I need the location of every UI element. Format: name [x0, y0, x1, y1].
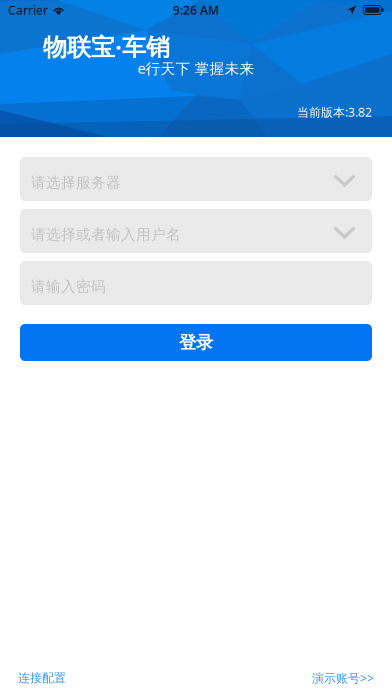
button[interactable]: 演示账号>>: [312, 670, 374, 686]
staticText: e行天下 掌握未来: [137, 58, 254, 78]
button[interactable]: 登录: [20, 324, 372, 361]
staticText: 9:26 AM: [173, 2, 219, 18]
staticText: 当前版本:3.82: [297, 104, 372, 120]
staticText: 请选择服务器: [31, 173, 121, 191]
button[interactable]: 请选择或者输入用户名: [20, 209, 372, 253]
staticText: 演示账号>>: [312, 670, 374, 686]
staticText: 物联宝·车销: [43, 31, 170, 62]
staticText: 请选择或者输入用户名: [31, 225, 181, 243]
button[interactable]: 连接配置: [18, 671, 66, 685]
button[interactable]: 请选择服务器: [20, 157, 372, 201]
staticText: 请输入密码: [31, 277, 106, 295]
staticText: 登录: [179, 332, 213, 353]
staticText: 连接配置: [18, 671, 66, 685]
button[interactable]: 请输入密码: [20, 261, 372, 305]
staticText: Carrier: [8, 2, 48, 18]
